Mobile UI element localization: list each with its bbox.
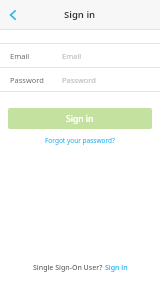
staticText: Password: [10, 75, 44, 85]
staticText: Email: [10, 51, 30, 61]
staticText: Forgot your password?: [45, 136, 115, 145]
button[interactable]: Single Sign-On User?: [0, 263, 160, 273]
staticText: Sign in: [64, 8, 96, 21]
staticText: Email: [62, 51, 82, 61]
staticText: Sign in: [66, 113, 94, 125]
button[interactable]: Password: [0, 68, 160, 91]
button[interactable]: Sign in: [8, 108, 152, 129]
button[interactable]: Forgot your password?: [0, 136, 160, 145]
button[interactable]: Email: [0, 44, 160, 67]
staticText: Password: [62, 75, 96, 85]
button[interactable]: Back: [0, 2, 26, 28]
staticText: Sign in: [105, 263, 128, 273]
staticText: Single Sign-On User?: [33, 263, 105, 273]
